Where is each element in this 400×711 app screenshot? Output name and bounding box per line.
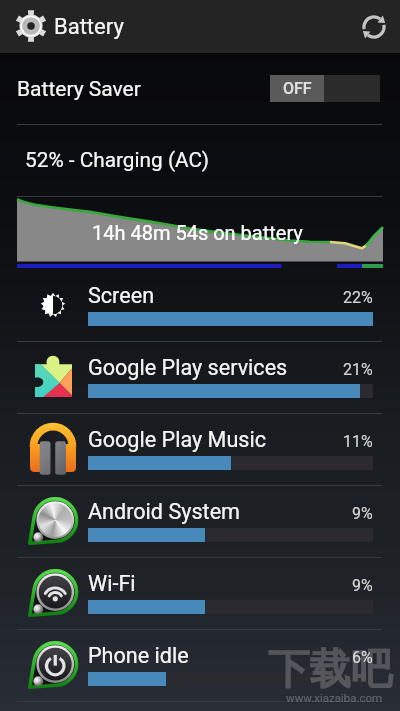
staticText: Android System — [88, 499, 241, 524]
staticText: Battery Saver — [17, 77, 141, 102]
button[interactable]: Google Play Music — [0, 414, 400, 486]
staticText: 22% — [343, 288, 373, 307]
staticText: 9% — [352, 504, 373, 523]
staticText: OFF — [283, 79, 312, 98]
button[interactable]: Android System — [0, 486, 400, 558]
button[interactable]: Battery Saver — [0, 53, 400, 125]
button[interactable]: Wi-Fi — [0, 558, 400, 630]
staticText: 14h 48m 54s on battery — [92, 221, 303, 244]
staticText: 9% — [352, 576, 373, 595]
staticText: Battery — [54, 14, 124, 40]
button[interactable]: Refresh — [347, 0, 400, 53]
staticText: 52% - Charging (AC) — [25, 148, 209, 172]
staticText: 11% — [343, 432, 373, 451]
staticText: Phone idle — [88, 643, 189, 668]
staticText: 21% — [343, 360, 373, 379]
staticText: Wi-Fi — [88, 571, 136, 596]
staticText: Google Play services — [88, 355, 288, 380]
button[interactable]: Phone idle — [0, 630, 400, 702]
staticText: 下载吧 — [268, 643, 393, 695]
staticText: www.xiazaiba.com — [286, 691, 383, 704]
button[interactable]: Screen — [0, 270, 400, 342]
staticText: 6% — [352, 648, 373, 667]
button[interactable]: Google Play services — [0, 342, 400, 414]
staticText: Screen — [88, 283, 155, 308]
staticText: Google Play Music — [88, 427, 267, 452]
